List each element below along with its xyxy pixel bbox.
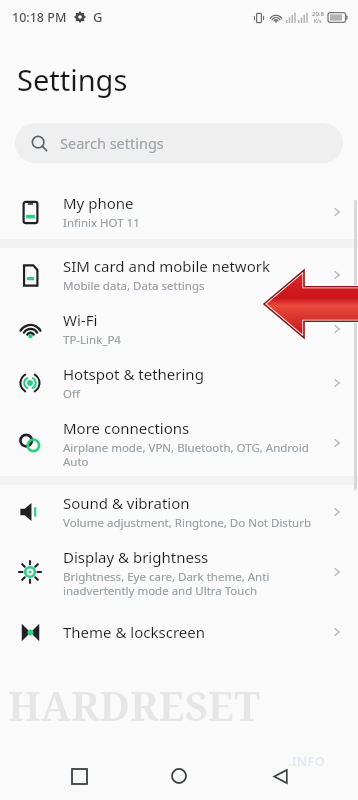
staticText: G	[93, 8, 103, 26]
staticText: Display & brightness	[63, 547, 209, 567]
staticText: Infinix HOT 11	[63, 215, 140, 231]
staticText: 10:18 PM	[12, 9, 67, 26]
button[interactable]: Back	[258, 754, 302, 798]
staticText: Wi-Fi	[63, 310, 98, 330]
staticText: Off	[63, 386, 80, 402]
button[interactable]: Display & brightness	[0, 539, 358, 605]
staticText: Theme & lockscreen	[63, 622, 205, 642]
staticText: 20.8	[312, 10, 324, 18]
button[interactable]: Wi-Fi	[0, 302, 358, 356]
button[interactable]: Search settings	[15, 123, 343, 163]
staticText: SIM card and mobile network	[63, 256, 270, 276]
staticText: Mobile data, Data settings	[63, 278, 205, 294]
staticText: Search settings	[60, 133, 164, 153]
staticText: K/s	[314, 18, 322, 25]
button[interactable]: More connections	[0, 410, 358, 476]
staticText: More connections	[63, 418, 190, 438]
staticText: Volume adjustment, Ringtone, Do Not Dist…	[63, 515, 311, 531]
button[interactable]: Home	[157, 754, 201, 798]
button[interactable]: My phone	[0, 185, 358, 239]
button[interactable]: Recent apps	[57, 754, 101, 798]
button[interactable]: Hotspot & tethering	[0, 356, 358, 410]
staticText: Hotspot & tethering	[63, 364, 204, 384]
staticText: My phone	[63, 193, 134, 213]
button[interactable]: Theme & lockscreen	[0, 605, 358, 659]
button[interactable]: SIM card and mobile network	[0, 248, 358, 302]
staticText: .INFO	[288, 752, 325, 770]
button[interactable]: Sound & vibration	[0, 485, 358, 539]
staticText: Settings	[17, 60, 128, 99]
staticText: Brightness, Eye care, Dark theme, Anti i…	[63, 569, 322, 598]
staticText: Sound & vibration	[63, 493, 190, 513]
staticText: Airplane mode, VPN, Bluetooth, OTG, Andr…	[63, 440, 322, 469]
staticText: HARDRESET	[8, 678, 261, 732]
staticText: TP-Link_P4	[63, 332, 121, 348]
